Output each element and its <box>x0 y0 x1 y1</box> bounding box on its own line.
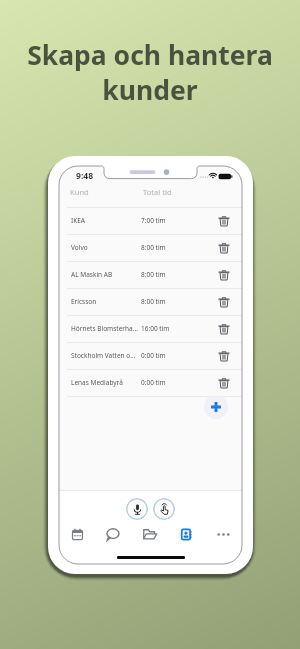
button[interactable]: Messages <box>95 524 131 544</box>
button[interactable]: Ericsson <box>59 289 242 315</box>
staticText: AL Maskin AB <box>71 270 138 279</box>
staticText: Total tid <box>143 187 172 197</box>
button[interactable]: Hörnets Blomsterhan… <box>59 316 242 342</box>
button[interactable]: Lenas Mediabyrå <box>59 370 242 396</box>
staticText: Lenas Mediabyrå <box>71 378 138 387</box>
staticText: 7:00 tim <box>141 216 166 225</box>
button[interactable]: Calendar <box>59 524 95 544</box>
staticText: 0:00 tim <box>141 378 166 387</box>
staticText: 16:00 tim <box>141 324 170 333</box>
button[interactable]: Add <box>204 395 228 419</box>
staticText: Kund <box>70 187 89 197</box>
button[interactable]: Volvo <box>59 235 242 261</box>
staticText: 8:00 tim <box>141 243 166 252</box>
staticText: 8:00 tim <box>141 270 166 279</box>
staticText: 8:00 tim <box>141 297 166 306</box>
staticText: Volvo <box>71 243 138 252</box>
staticText: Stockholm Vatten och… <box>71 351 138 360</box>
button[interactable]: Contacts <box>168 524 205 544</box>
button[interactable]: Delete <box>216 213 232 229</box>
staticText: Hörnets Blomsterhan… <box>71 324 138 333</box>
staticText: Ericsson <box>71 297 138 306</box>
button[interactable]: Stockholm Vatten och… <box>59 343 242 369</box>
button[interactable]: More <box>205 524 242 544</box>
button[interactable]: Files <box>131 524 168 544</box>
button[interactable]: Delete <box>216 375 232 391</box>
staticText: IKEA <box>71 216 138 225</box>
button[interactable]: Touch input <box>153 498 175 520</box>
staticText: 0:00 tim <box>141 351 166 360</box>
button[interactable]: IKEA <box>59 208 242 234</box>
button[interactable]: AL Maskin AB <box>59 262 242 288</box>
staticText: 9:48 <box>76 170 94 182</box>
button[interactable]: Delete <box>216 348 232 364</box>
button[interactable]: Delete <box>216 240 232 256</box>
staticText: Skapa och hantera kunder <box>27 37 273 108</box>
button[interactable]: Delete <box>216 321 232 337</box>
button[interactable]: Delete <box>216 267 232 283</box>
button[interactable]: Voice input <box>126 498 148 520</box>
button[interactable]: Delete <box>216 294 232 310</box>
